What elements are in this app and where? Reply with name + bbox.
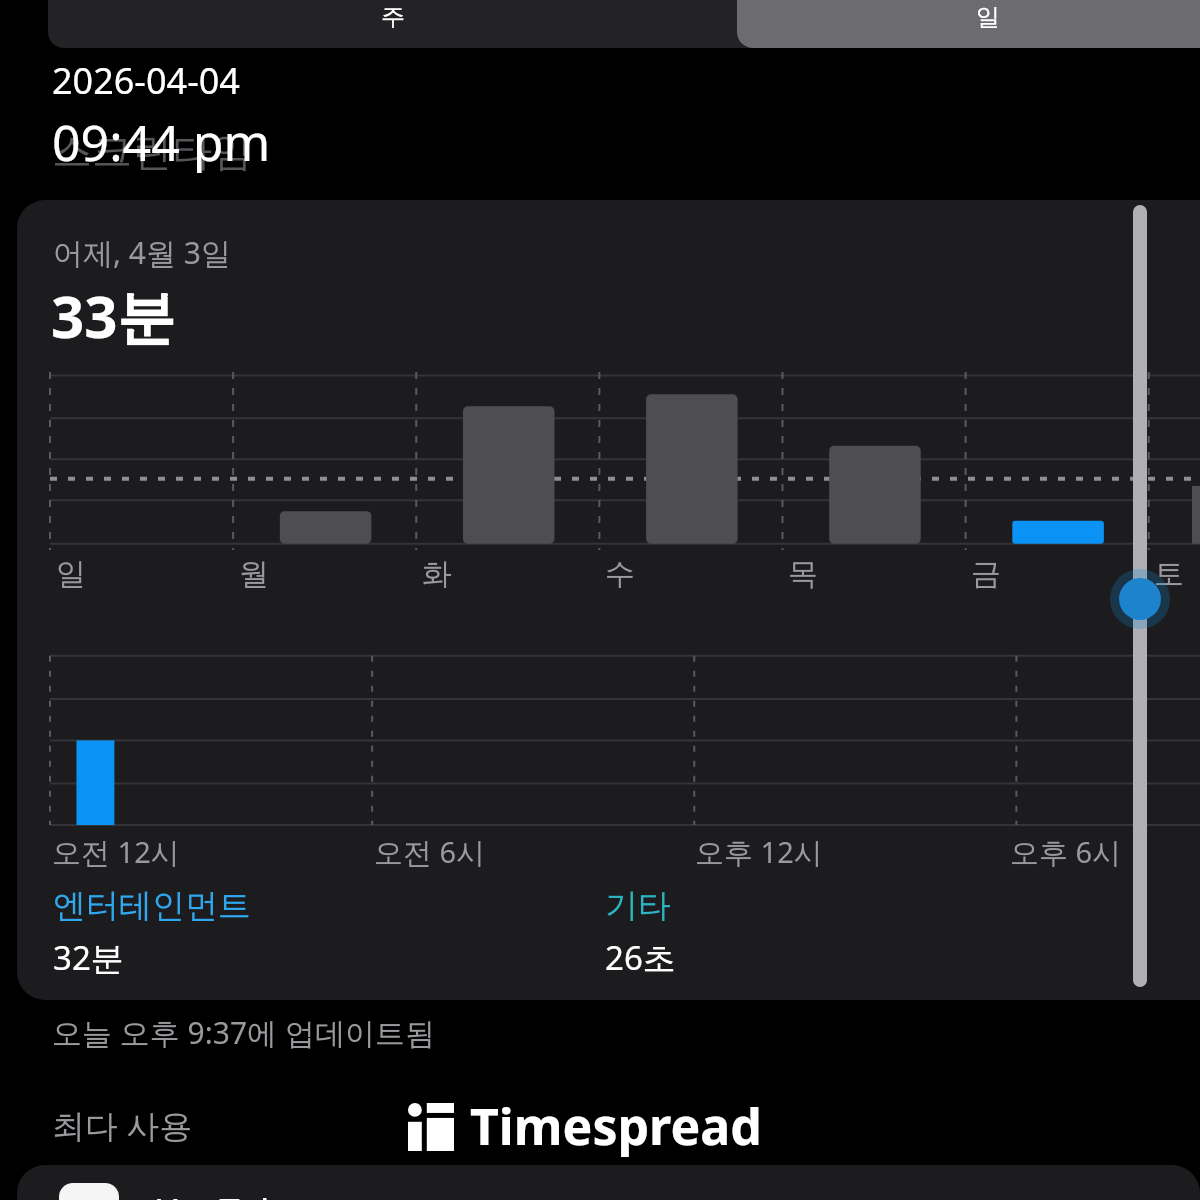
staticText: 오전 6시	[374, 832, 486, 872]
staticText: 일	[56, 555, 86, 593]
staticText: 어제, 4월 3일	[53, 232, 231, 273]
staticText: 26초	[605, 935, 676, 980]
button[interactable]: YouTube	[17, 1165, 1200, 1200]
staticText: 오전 12시	[52, 832, 180, 872]
staticText: 기타	[605, 885, 671, 927]
staticText: 09:44 pm	[52, 108, 271, 176]
button[interactable]: 엔터테인먼트	[53, 885, 251, 972]
staticText: 2026-04-04	[52, 56, 240, 105]
button[interactable]: 주	[48, 0, 737, 48]
staticText: 33분	[51, 276, 176, 355]
staticText: 화	[422, 555, 452, 593]
staticText: 목	[788, 555, 818, 593]
staticText: 최다 사용	[52, 1103, 193, 1148]
staticText: 32분	[53, 935, 124, 980]
staticText: 오후 12시	[695, 832, 823, 872]
staticText: 오늘 오후 9:37에 업데이트됨	[52, 1012, 435, 1053]
staticText: 토	[1154, 555, 1184, 593]
staticText: 일	[976, 2, 1000, 32]
staticText: 스크린타임	[52, 126, 252, 176]
staticText: YouTube	[157, 1187, 303, 1200]
staticText: 금	[971, 555, 1001, 593]
staticText: 주	[381, 2, 405, 32]
button[interactable]: 어제, 4월 3일	[17, 200, 1200, 1000]
button[interactable]: 기타	[605, 885, 676, 972]
staticText: 월	[239, 555, 269, 593]
staticText: 오후 6시	[1010, 832, 1122, 872]
staticText: 수	[605, 555, 635, 593]
staticText: 엔터테인먼트	[53, 885, 251, 927]
button[interactable]: 일	[737, 0, 1200, 48]
staticText: Timespread	[470, 1092, 762, 1160]
